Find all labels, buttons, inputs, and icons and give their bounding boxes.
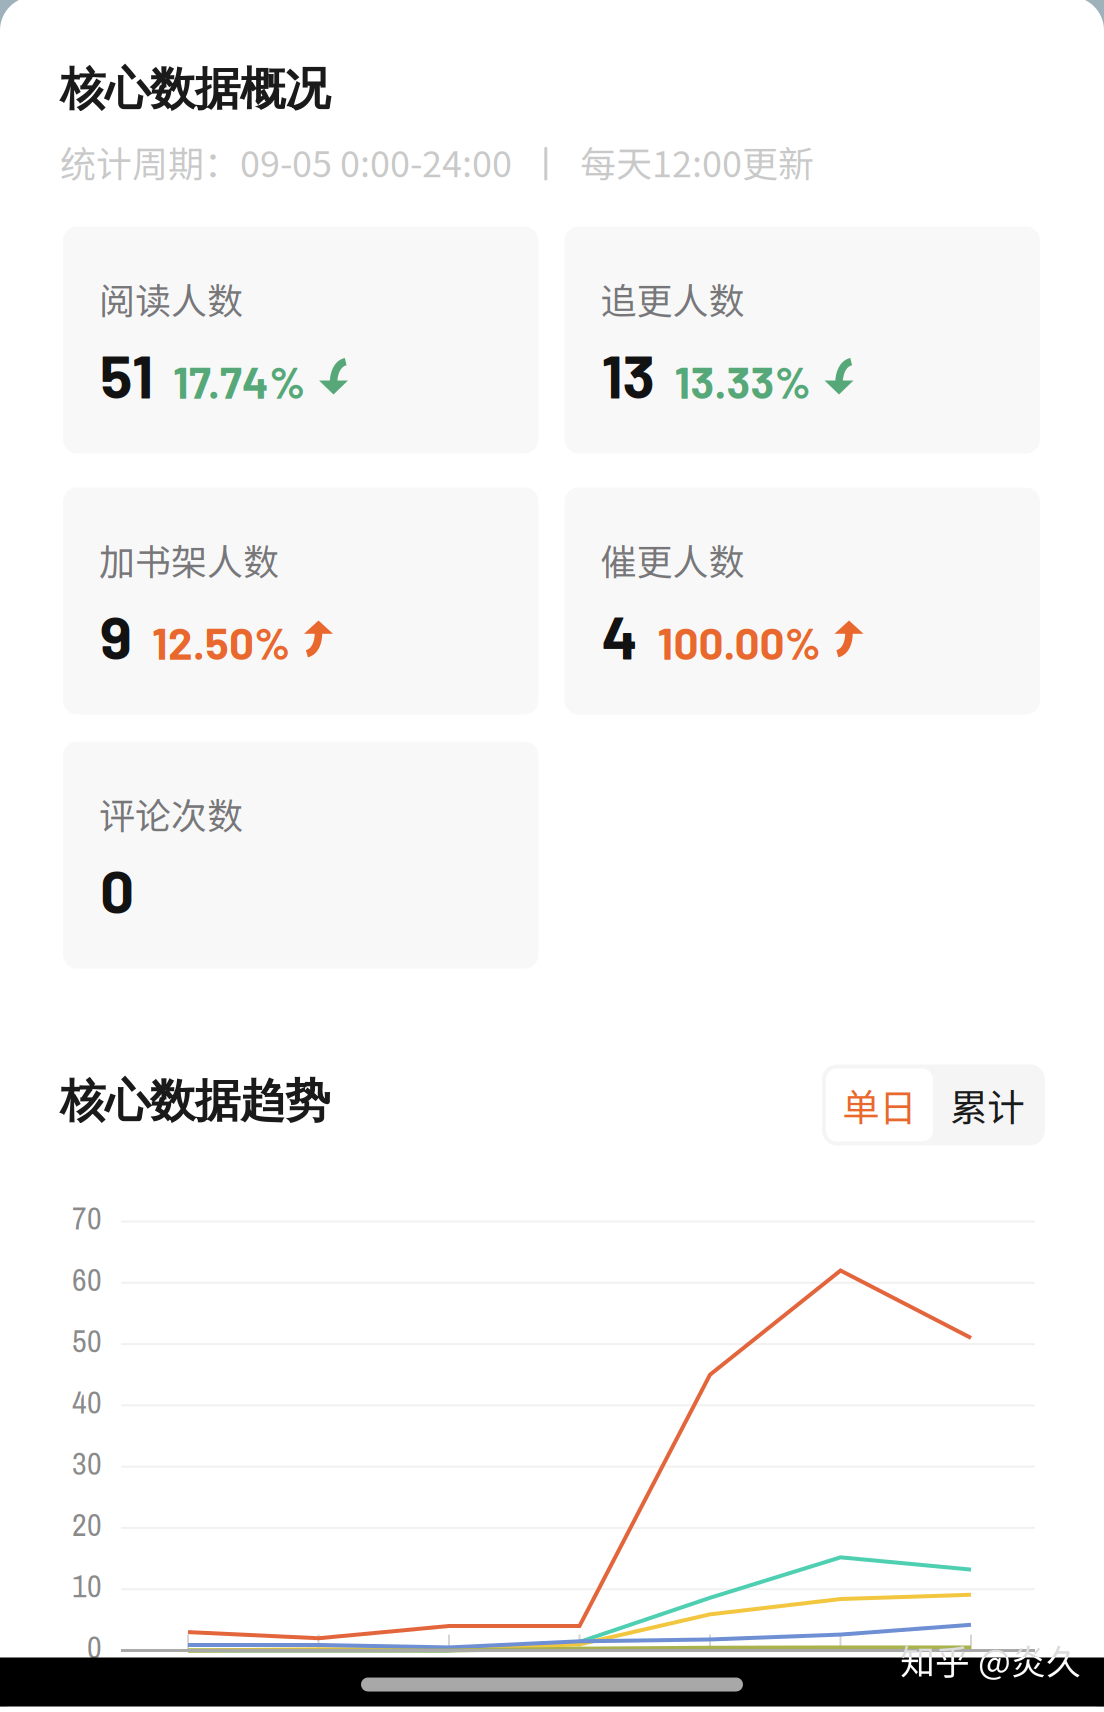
staticText: 阅读人数	[99, 272, 243, 325]
button[interactable]: 单日	[826, 1068, 933, 1141]
staticText: 17.74%	[173, 355, 305, 407]
staticText: 累计	[950, 1078, 1024, 1132]
staticText: 0	[87, 1625, 102, 1669]
staticText: 催更人数	[600, 533, 744, 586]
staticText: 30	[72, 1442, 102, 1485]
staticText: 4	[601, 599, 637, 671]
staticText: 统计周期：09-05 0:00-24:00 丨 每天12:00更新	[60, 135, 814, 188]
staticText: 知乎 @炎久	[900, 1634, 1081, 1685]
staticText: 51	[100, 338, 153, 410]
staticText: 追更人数	[600, 272, 744, 325]
staticText: 40	[72, 1380, 102, 1423]
staticText: 100.00%	[657, 616, 820, 668]
staticText: 核心数据概况	[60, 60, 330, 118]
staticText: 0	[100, 853, 134, 925]
staticText: 核心数据趋势	[60, 1072, 330, 1130]
staticText: 9	[100, 599, 132, 671]
staticText: 加书架人数	[99, 533, 279, 586]
staticText: 60	[72, 1258, 102, 1301]
button[interactable]: 累计	[933, 1068, 1041, 1141]
staticText: 12.50%	[152, 616, 290, 668]
staticText: 10	[72, 1564, 102, 1607]
staticText: 20	[72, 1503, 102, 1546]
staticText: 70	[72, 1196, 102, 1240]
staticText: 13	[601, 338, 654, 410]
staticText: 知乎 @炎久	[900, 1634, 1081, 1685]
staticText: 50	[72, 1319, 102, 1362]
staticText: 13.33%	[674, 355, 810, 407]
staticText: 评论次数	[99, 787, 243, 840]
staticText: 单日	[842, 1078, 916, 1132]
